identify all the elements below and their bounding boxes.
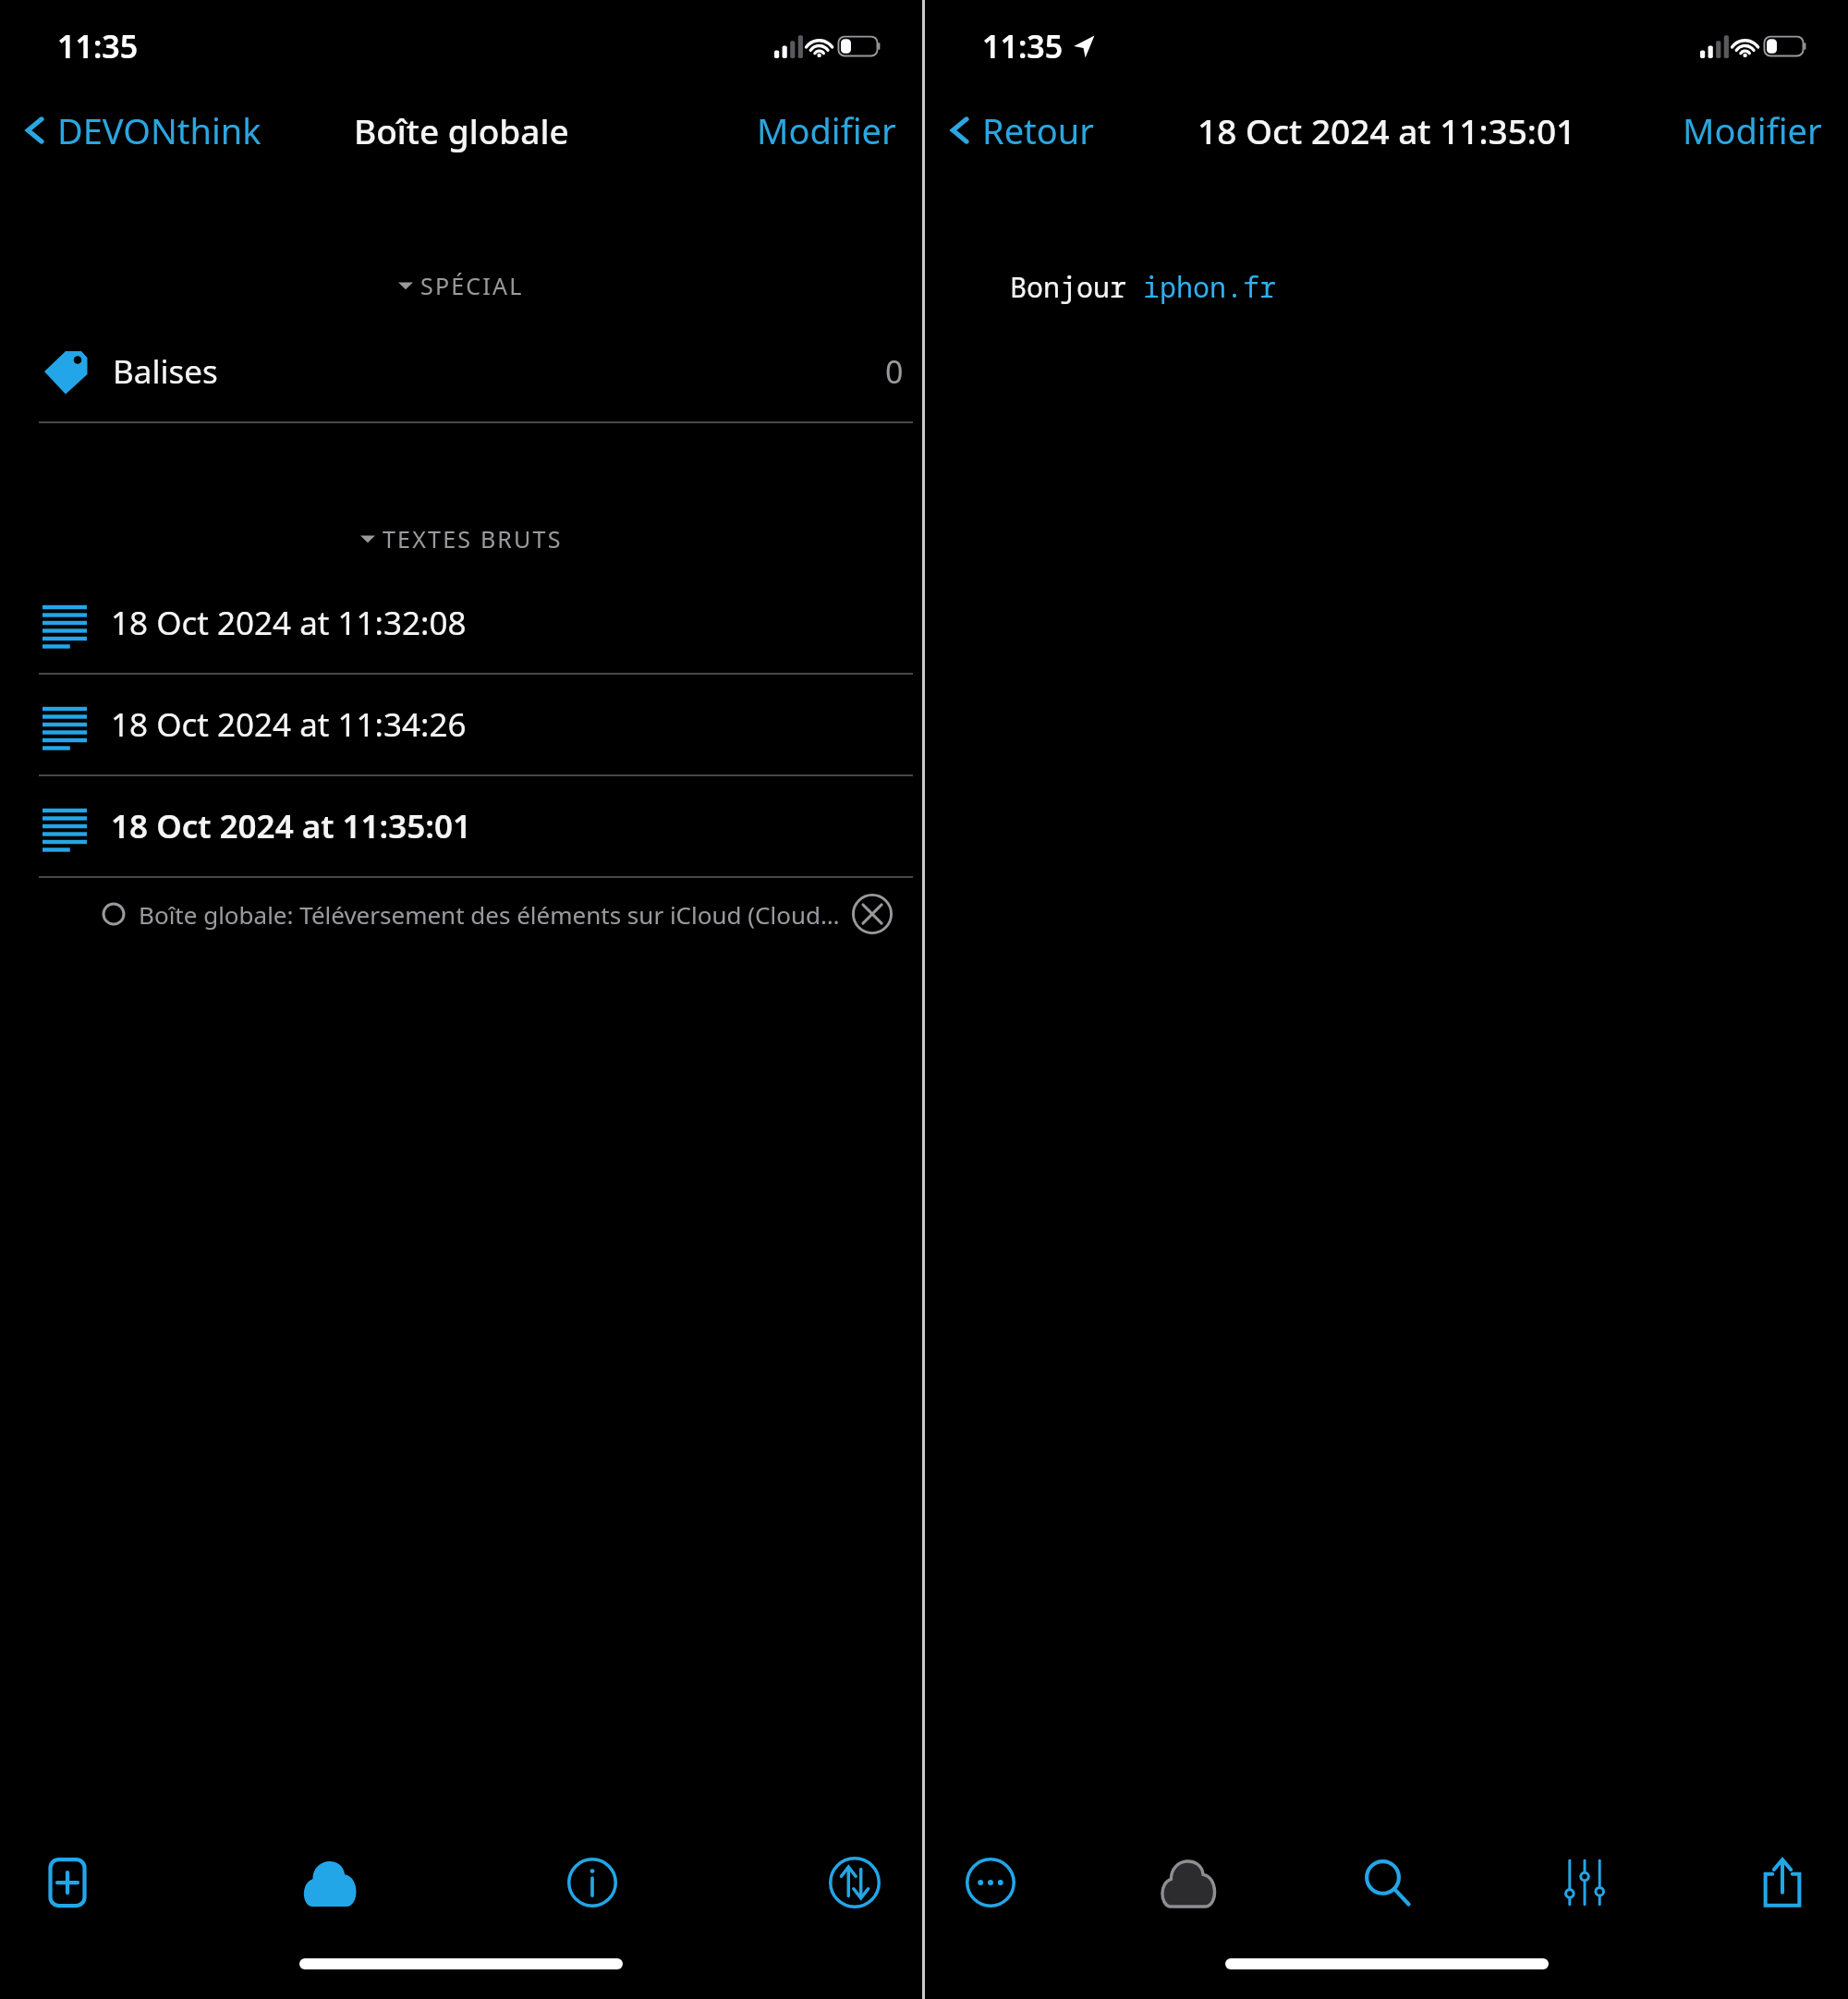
staticText: Boîte globale: Téléversement des élément… <box>139 898 840 931</box>
button[interactable]: Réglages <box>1534 1832 1635 1933</box>
staticText: 18 Oct 2024 at 11:34:26 <box>111 702 467 747</box>
button[interactable]: Annuler <box>846 888 898 940</box>
staticText: DEVONthink <box>57 106 261 154</box>
button[interactable]: 18 Oct 2024 at 11:34:26 <box>0 675 922 774</box>
button[interactable]: Informations <box>541 1832 643 1933</box>
button[interactable]: iCloud <box>1137 1832 1239 1933</box>
staticText: SPÉCIAL <box>420 270 524 301</box>
button[interactable]: Plus d'options <box>940 1832 1041 1933</box>
button[interactable]: Rechercher <box>1336 1832 1438 1933</box>
button[interactable]: 18 Oct 2024 at 11:32:08 <box>0 573 922 673</box>
staticText: 11:35 <box>57 25 139 67</box>
button[interactable]: Modifier <box>1683 106 1848 154</box>
button[interactable]: SPÉCIAL <box>0 270 922 301</box>
button[interactable]: Nouveau <box>17 1832 118 1933</box>
staticText: 18 Oct 2024 at 11:35:01 <box>1198 107 1576 153</box>
staticText: 18 Oct 2024 at 11:35:01 <box>111 804 471 848</box>
staticText: Bonjour iphon.fr <box>1010 268 1276 306</box>
button[interactable]: Balises <box>0 322 922 421</box>
staticText: TEXTES BRUTS <box>383 523 563 555</box>
button[interactable]: DEVONthink <box>17 106 265 154</box>
staticText: 18 Oct 2024 at 11:32:08 <box>111 601 467 645</box>
staticText: 11:35 <box>982 25 1064 67</box>
button[interactable]: Modifier <box>757 106 922 154</box>
staticText: Retour <box>982 106 1094 154</box>
button[interactable]: 18 Oct 2024 at 11:35:01 <box>0 776 922 876</box>
staticText: 0 <box>885 350 904 393</box>
button[interactable]: TEXTES BRUTS <box>0 523 922 555</box>
button[interactable]: Retour <box>942 106 1098 154</box>
button[interactable]: Synchroniser <box>804 1832 906 1933</box>
staticText: Boîte globale <box>354 107 569 153</box>
button[interactable]: Partager <box>1732 1832 1833 1933</box>
staticText: Balises <box>113 349 218 394</box>
button[interactable]: iCloud <box>279 1832 381 1933</box>
